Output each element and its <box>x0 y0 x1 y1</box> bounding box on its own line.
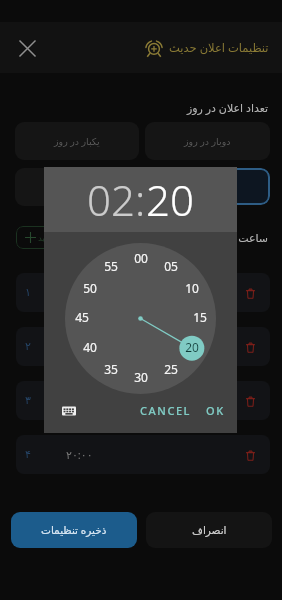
button[interactable]: 20 <box>146 171 194 228</box>
button[interactable]: ذخیره تنظیمات <box>11 512 137 548</box>
button[interactable]: جدید <box>16 226 64 249</box>
staticText: ۱۲:۰۰ <box>66 339 93 354</box>
staticText: تعداد اعلان در روز <box>187 100 269 115</box>
staticText: دوبار در روز <box>184 135 231 148</box>
staticText: ذخیره تنظیمات <box>41 523 107 537</box>
button[interactable]: ۴ <box>16 435 270 474</box>
staticText: : <box>135 171 146 228</box>
button[interactable] <box>145 168 270 205</box>
staticText: 40 <box>83 339 97 355</box>
staticText: ساعت اعلان ها <box>199 230 269 245</box>
staticText: ۰۸:۰۰ <box>66 285 93 300</box>
staticText: انصراف <box>192 524 227 536</box>
staticText: 25 <box>164 361 178 377</box>
staticText: 20 <box>185 339 199 355</box>
staticText: 55 <box>104 258 118 274</box>
staticText: 05 <box>164 258 178 274</box>
staticText: ۱ <box>25 286 31 299</box>
staticText: CANCEL <box>140 403 192 418</box>
staticText: 15 <box>193 309 207 325</box>
button[interactable]: OK <box>202 399 229 422</box>
button[interactable]: Close <box>10 31 44 65</box>
staticText: 35 <box>104 361 118 377</box>
staticText: ۱۶:۰۰ <box>66 393 93 408</box>
button[interactable]: 02 <box>87 171 135 228</box>
button[interactable]: Delete <box>239 336 261 358</box>
staticText: ۲۰:۰۰ <box>66 447 93 462</box>
staticText: ۲ <box>25 340 31 353</box>
staticText: تنظیمات اعلان حدیث <box>169 40 269 56</box>
staticText: یکبار در روز <box>54 135 100 148</box>
staticText: 45 <box>75 309 89 325</box>
button[interactable]: ۲ <box>16 327 270 366</box>
button[interactable] <box>15 168 139 206</box>
button[interactable]: CANCEL <box>136 399 196 422</box>
button[interactable]: ۱ <box>16 273 270 312</box>
button[interactable]: ۳ <box>16 381 270 420</box>
button[interactable]: Delete <box>239 444 261 466</box>
button[interactable]: دوبار در روز <box>145 122 270 160</box>
staticText: ۳ <box>25 394 31 407</box>
staticText: OK <box>206 403 225 418</box>
staticText: 10 <box>185 280 199 296</box>
staticText: 30 <box>134 369 148 385</box>
staticText: جدید <box>38 233 55 243</box>
button[interactable]: Delete <box>239 390 261 412</box>
button[interactable]: یکبار در روز <box>15 122 139 160</box>
button[interactable]: انصراف <box>146 512 272 548</box>
staticText: 00 <box>134 250 148 266</box>
staticText: 50 <box>83 280 97 296</box>
button[interactable]: Delete <box>239 282 261 304</box>
staticText: ۴ <box>25 448 31 461</box>
button[interactable]: Switch to text input <box>56 398 82 424</box>
button[interactable]: تنظیمات اعلان حدیث <box>145 39 269 57</box>
